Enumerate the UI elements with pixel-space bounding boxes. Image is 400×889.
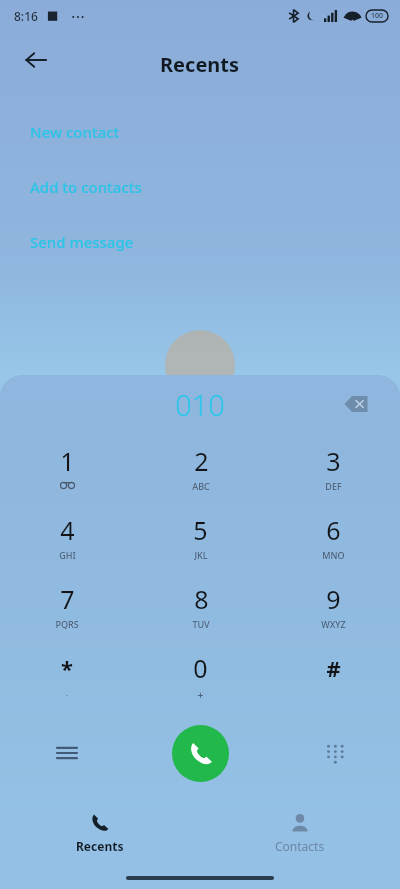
staticText: Contacts [275,838,325,854]
button[interactable]: 5 [134,502,267,571]
staticText: 5 [193,513,208,547]
button[interactable]: 8 [134,571,267,640]
button[interactable]: # [267,640,400,709]
button[interactable]: More options [41,727,93,779]
button[interactable]: 6 [267,502,400,571]
staticText: 2 [194,444,209,478]
button[interactable]: Back [12,36,60,84]
staticText: , [65,685,69,696]
staticText: 3 [326,444,341,478]
staticText: Recents [76,838,124,854]
staticText: JKL [194,549,208,560]
staticText: 8 [194,582,209,616]
staticText: 9 [326,582,341,616]
button[interactable]: * [0,640,134,709]
staticText: MNO [322,549,345,560]
button[interactable]: Dialpad [308,727,360,779]
button[interactable]: Add to contacts [30,173,142,201]
staticText: WXYZ [321,618,346,629]
staticText: TUV [192,618,210,629]
button[interactable]: Contacts [200,805,400,861]
button[interactable]: 3 [267,433,400,502]
staticText: 7 [60,582,75,616]
button[interactable]: 1 [0,433,134,502]
staticText: 010 [175,385,225,424]
button[interactable]: 7 [0,571,134,640]
staticText: 0 [193,651,208,685]
staticText: 1 [60,444,75,478]
staticText: GHI [59,549,76,560]
button[interactable]: 2 [134,433,267,502]
staticText: 4 [60,513,75,547]
staticText: # [326,653,341,683]
button[interactable]: 4 [0,502,134,571]
staticText: Send message [30,232,134,252]
staticText: + [197,687,204,698]
staticText: ABC [192,480,210,491]
button[interactable]: Call [172,725,229,782]
staticText: Add to contacts [30,177,142,197]
staticText: New contact [30,122,120,142]
staticText: 6 [326,513,341,547]
staticText: PQRS [55,618,79,629]
staticText: 8:16 [14,8,38,24]
staticText: 100 [371,11,384,21]
button[interactable]: Recents [0,805,200,861]
button[interactable]: 0 [134,640,267,709]
staticText: * [61,653,73,683]
button[interactable]: New contact [30,118,120,146]
staticText: Recents [160,51,240,78]
staticText: DEF [325,480,342,491]
button[interactable]: Send message [30,228,134,256]
button[interactable]: Backspace [336,384,376,424]
button[interactable]: 9 [267,571,400,640]
